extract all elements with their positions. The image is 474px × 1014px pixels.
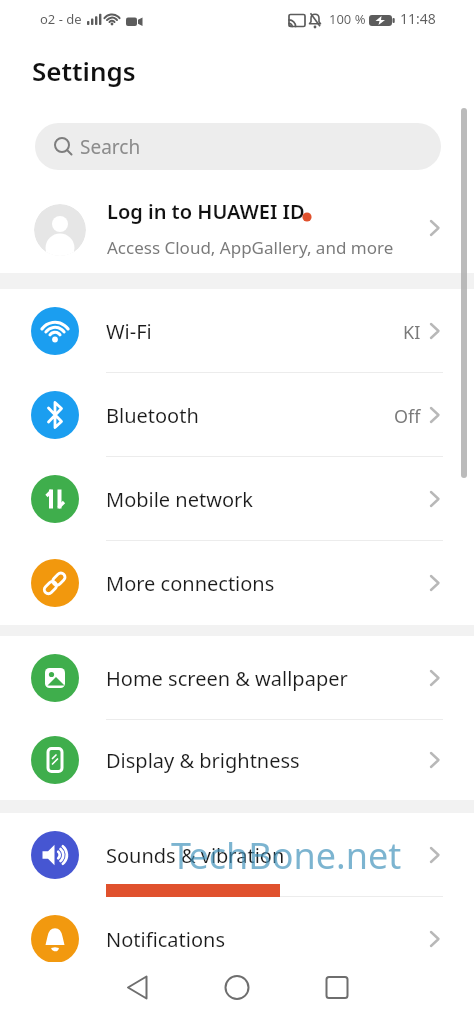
- staticText: Search: [80, 134, 141, 160]
- button[interactable]: Notifications: [0, 897, 474, 981]
- staticText: 11:48: [400, 9, 436, 28]
- staticText: Settings: [32, 53, 136, 88]
- staticText: KI: [403, 320, 421, 345]
- staticText: o2 - de: [40, 10, 82, 28]
- button[interactable]: Wi-Fi: [0, 289, 474, 373]
- button[interactable]: Sounds & vibration: [0, 813, 474, 897]
- staticText: 100 %: [329, 10, 366, 28]
- staticText: More connections: [106, 570, 275, 597]
- staticText: Home screen & wallpaper: [106, 665, 348, 692]
- staticText: TechBone.net: [171, 831, 402, 880]
- button[interactable]: Home screen & wallpaper: [0, 636, 474, 720]
- button[interactable]: Bluetooth: [0, 373, 474, 457]
- staticText: Off: [394, 404, 421, 429]
- button[interactable]: Mobile network: [0, 457, 474, 541]
- staticText: Log in to HUAWEI ID: [107, 198, 305, 225]
- button[interactable]: [317, 967, 357, 1007]
- button[interactable]: More connections: [0, 541, 474, 625]
- staticText: Mobile network: [106, 486, 253, 513]
- staticText: Notifications: [106, 926, 225, 953]
- staticText: Display & brightness: [106, 747, 300, 774]
- button[interactable]: Search: [35, 123, 441, 170]
- button[interactable]: Display & brightness: [0, 718, 474, 802]
- button[interactable]: [217, 967, 257, 1007]
- staticText: Wi-Fi: [106, 318, 152, 345]
- staticText: Sounds & vibration: [106, 842, 285, 869]
- staticText: Access Cloud, AppGallery, and more: [107, 236, 394, 259]
- staticText: Bluetooth: [106, 402, 199, 429]
- button[interactable]: Log in to HUAWEI ID: [0, 180, 474, 273]
- button[interactable]: [118, 967, 158, 1007]
